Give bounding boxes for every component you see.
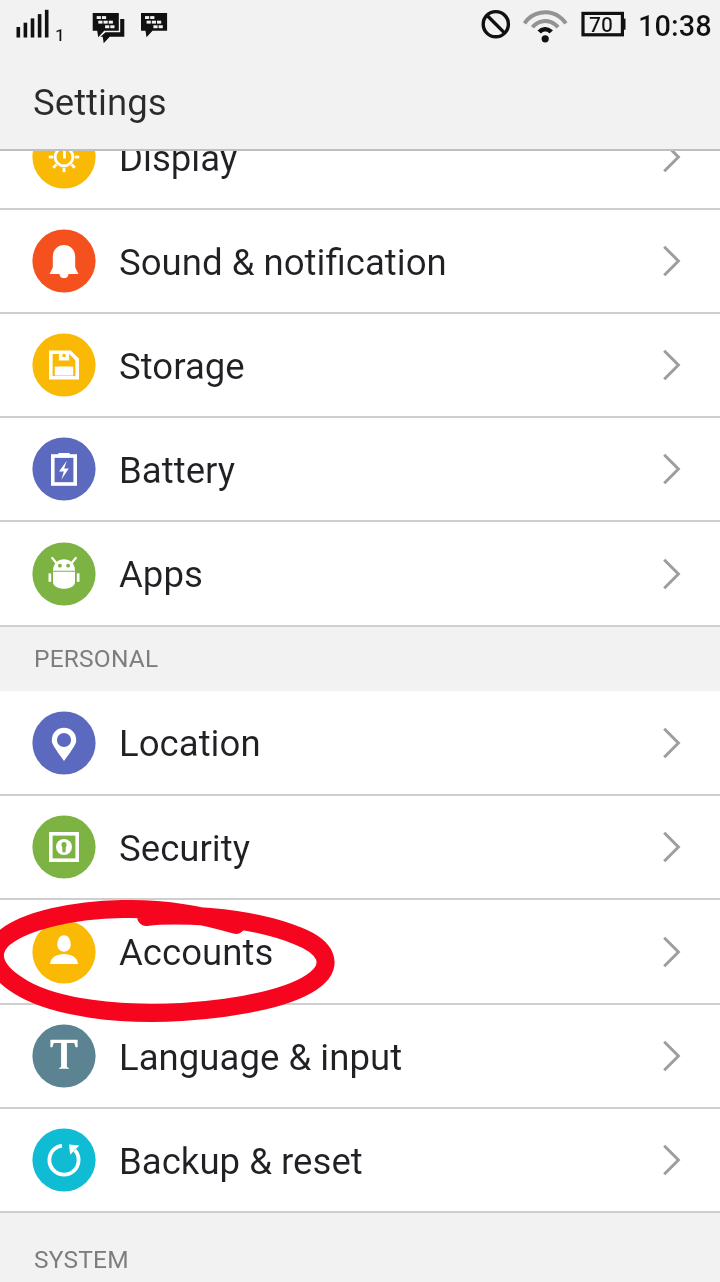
staticText: Accounts [119, 931, 274, 974]
staticText: PERSONAL [34, 644, 159, 673]
staticText: Storage [119, 345, 245, 388]
staticText: Sound & notification [119, 241, 447, 284]
staticText: 10:38 [638, 9, 712, 43]
button[interactable]: Storage [0, 314, 720, 418]
staticText: Settings [33, 81, 167, 124]
button[interactable]: Battery [0, 418, 720, 522]
staticText: 1 [55, 25, 65, 45]
staticText: Language & input [119, 1036, 403, 1079]
staticText: Apps [119, 553, 203, 596]
staticText: SYSTEM [34, 1245, 129, 1274]
button[interactable]: Accounts [0, 900, 720, 1005]
button[interactable]: Location [0, 691, 720, 796]
button[interactable]: Security [0, 796, 720, 900]
button[interactable]: Backup & reset [0, 1109, 720, 1213]
button[interactable]: Apps [0, 522, 720, 627]
button[interactable]: Sound & notification [0, 210, 720, 314]
button[interactable]: Language & input [0, 1005, 720, 1109]
staticText: Battery [119, 449, 236, 492]
staticText: Location [119, 722, 261, 765]
staticText: Backup & reset [119, 1140, 363, 1183]
staticText: Display [119, 151, 238, 180]
staticText: 70 [589, 13, 613, 38]
staticText: Security [119, 827, 251, 870]
button[interactable]: Display [0, 151, 720, 210]
